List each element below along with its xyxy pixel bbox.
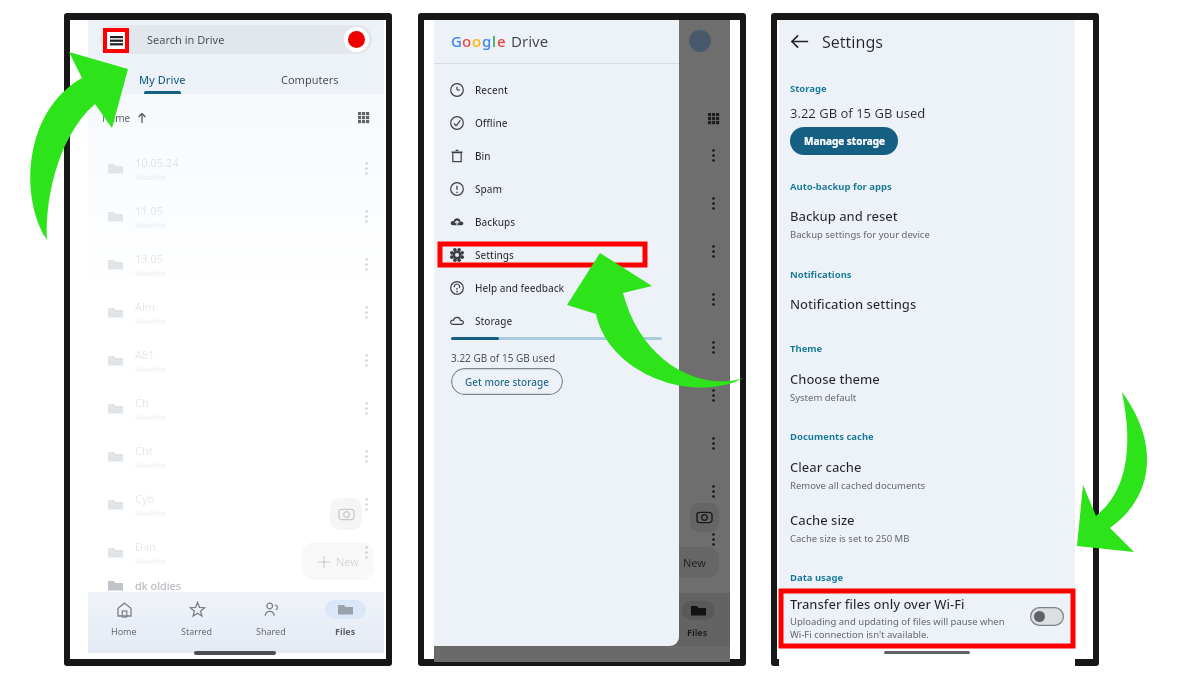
staticText: Auto-backup for apps (790, 180, 892, 193)
staticText: Search in Drive (147, 32, 225, 47)
button[interactable]: 13.05 (88, 242, 384, 286)
button[interactable]: 10.05.24 (88, 146, 384, 190)
button[interactable]: Home (93, 592, 155, 650)
button[interactable]: New (302, 542, 374, 580)
staticText: 3.22 GB of 15 GB used (451, 351, 556, 365)
staticText: o (462, 31, 472, 51)
button[interactable]: Cht (88, 434, 384, 478)
button[interactable]: My Drive (88, 60, 236, 94)
button[interactable]: dk oldies (88, 574, 384, 596)
staticText: Dan (135, 539, 156, 554)
staticText: Get more storage (465, 375, 549, 389)
staticText: Backup and reset (790, 207, 898, 225)
button[interactable]: Settings (434, 238, 679, 271)
button[interactable]: Starred (166, 592, 228, 650)
staticText: Clear cache (790, 458, 862, 476)
staticText: 13.05 (135, 251, 164, 266)
button[interactable]: Cyb (88, 482, 384, 526)
staticText: Modified (135, 172, 167, 182)
staticText: Spam (475, 182, 502, 196)
staticText: l (492, 31, 497, 51)
button[interactable]: Recent (434, 73, 679, 106)
button[interactable]: Menu (103, 28, 129, 53)
staticText: Uploading and updating of files will pau… (790, 615, 1005, 628)
staticText: e (497, 31, 506, 51)
button[interactable]: Spam (434, 172, 679, 205)
button[interactable]: Get more storage (451, 368, 563, 395)
staticText: Modified (135, 316, 167, 326)
staticText: A81 (135, 347, 155, 362)
staticText: Settings (822, 31, 883, 53)
staticText: Documents cache (790, 430, 874, 443)
staticText: Modified (135, 412, 167, 422)
staticText: 10.05.24 (135, 155, 179, 170)
staticText: Starred (181, 625, 213, 637)
button[interactable]: Manage storage (790, 127, 898, 155)
button[interactable]: Search in Drive (100, 25, 372, 54)
staticText: Help and feedback (475, 281, 565, 295)
staticText: Modified (135, 220, 167, 230)
button[interactable]: Account (344, 27, 369, 52)
staticText: New (336, 554, 359, 569)
staticText: Name (102, 111, 131, 125)
staticText: Notification settings (790, 295, 917, 313)
button[interactable]: Backup and reset (779, 207, 1075, 241)
staticText: Modified (135, 364, 167, 374)
staticText: Cht (135, 443, 153, 458)
staticText: Modified (135, 460, 167, 470)
staticText: Bin (475, 149, 491, 163)
button[interactable]: Backups (434, 205, 679, 238)
button[interactable]: A81 (88, 338, 384, 382)
staticText: Remove all cached documents (790, 479, 926, 492)
button[interactable]: Offline (434, 106, 679, 139)
button[interactable]: Files (314, 592, 376, 650)
staticText: System default (790, 391, 857, 404)
staticText: g (482, 31, 492, 51)
staticText: Files (335, 625, 356, 637)
staticText: Files (687, 626, 708, 638)
staticText: Notifications (790, 268, 852, 281)
button[interactable]: Storage (434, 304, 679, 337)
staticText: Recent (475, 83, 508, 97)
staticText: Modified (135, 268, 167, 278)
button[interactable]: Alm (88, 290, 384, 334)
button[interactable]: Choose theme (779, 370, 1075, 404)
other: Grid view (358, 112, 369, 123)
button[interactable]: Computers (236, 60, 384, 94)
staticText: Cyb (135, 491, 155, 506)
staticText: Theme (790, 342, 823, 355)
button[interactable]: Bin (434, 139, 679, 172)
button[interactable]: Scan (690, 503, 719, 532)
button[interactable]: Clear cache (779, 458, 1075, 492)
staticText: dk oldies (135, 578, 182, 593)
staticText: Home (111, 625, 137, 637)
button[interactable]: Ch (88, 386, 384, 430)
staticText: Offline (475, 116, 508, 130)
staticText: Wi-Fi connection isn't available. (790, 628, 929, 641)
staticText: Cache size (790, 511, 855, 529)
staticText: 11.05 (135, 203, 164, 218)
staticText: Storage (475, 314, 513, 328)
staticText: Data usage (790, 571, 844, 584)
staticText: Ch (135, 395, 149, 410)
button[interactable]: Notification settings (779, 295, 1075, 313)
button[interactable]: Back (785, 27, 813, 55)
staticText: Shared (256, 625, 286, 637)
staticText: My Drive (139, 72, 186, 87)
button[interactable]: Scan (330, 498, 362, 530)
button[interactable]: Transfer files only over Wi-Fi (779, 592, 1075, 644)
staticText: Backups (475, 215, 516, 229)
button[interactable]: Cache size (779, 511, 1075, 545)
button[interactable]: 11.05 (88, 194, 384, 238)
staticText: Settings (475, 248, 514, 262)
button[interactable]: Dan (88, 530, 384, 574)
button[interactable]: Shared (240, 592, 302, 650)
staticText: Transfer files only over Wi-Fi (790, 595, 965, 613)
button[interactable]: Help and feedback (434, 271, 679, 304)
staticText: G (451, 31, 462, 51)
staticText: Modified (135, 508, 167, 518)
staticText: Cache size is set to 250 MB (790, 532, 910, 545)
staticText: 3.22 GB of 15 GB used (790, 104, 926, 122)
staticText: Modified (135, 556, 167, 566)
button[interactable]: New (669, 547, 719, 578)
